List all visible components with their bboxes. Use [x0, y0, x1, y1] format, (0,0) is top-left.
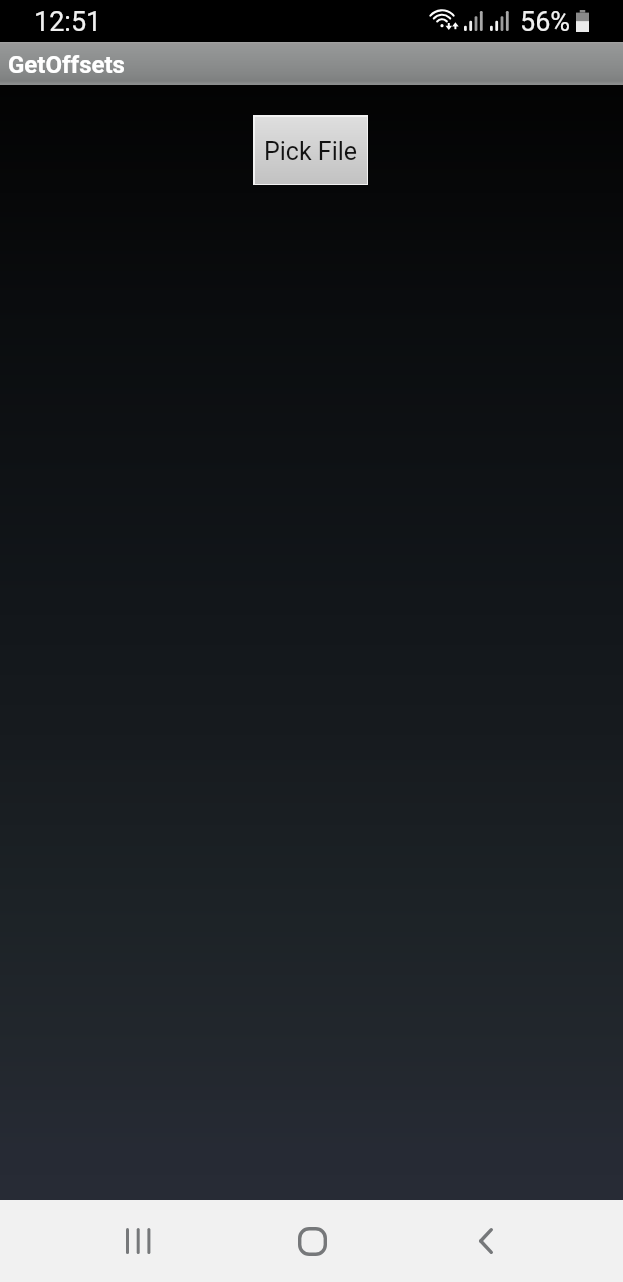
button[interactable]: Pick File — [253, 115, 368, 185]
button[interactable]: Home — [274, 1200, 350, 1282]
staticText: 56% — [520, 6, 571, 38]
button[interactable]: Back — [448, 1200, 524, 1282]
staticText: Pick File — [264, 137, 358, 166]
staticText: 12:51 — [34, 6, 102, 38]
button[interactable]: Recent apps — [100, 1200, 176, 1282]
staticText: GetOffsets — [8, 51, 125, 79]
